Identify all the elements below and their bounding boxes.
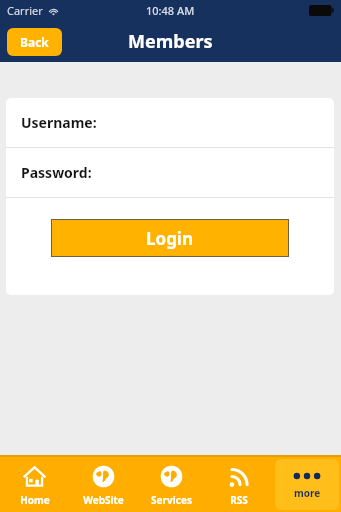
staticText: Members — [128, 29, 213, 54]
staticText: Password: — [21, 163, 92, 182]
button[interactable]: Back — [7, 28, 62, 56]
staticText: Home — [20, 493, 50, 507]
button[interactable]: Services — [137, 457, 205, 512]
button[interactable]: Password: — [6, 148, 334, 197]
staticText: WebSite — [83, 493, 124, 507]
staticText: more — [294, 486, 321, 500]
staticText: RSS — [230, 493, 248, 507]
button[interactable]: Username: — [6, 98, 334, 147]
button[interactable]: RSS — [205, 457, 273, 512]
button[interactable]: Home — [0, 457, 69, 512]
button[interactable]: WebSite — [69, 457, 137, 512]
button[interactable]: More — [275, 459, 339, 510]
staticText: Back — [20, 34, 49, 50]
staticText: Login — [146, 227, 194, 250]
staticText: Services — [151, 493, 192, 507]
staticText: Username: — [21, 113, 97, 132]
staticText: 10:48 AM — [146, 3, 195, 18]
staticText: Carrier — [7, 3, 43, 18]
button[interactable]: Login — [51, 219, 289, 257]
